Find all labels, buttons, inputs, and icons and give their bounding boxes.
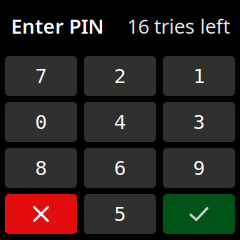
staticText: 7 <box>35 65 47 87</box>
staticText: 0 <box>35 111 47 133</box>
button[interactable]: 2 <box>84 56 156 96</box>
staticText: 16 tries left <box>127 13 230 39</box>
button[interactable]: 6 <box>84 148 156 188</box>
button[interactable]: 7 <box>5 56 77 96</box>
staticText: 2 <box>114 65 126 87</box>
button[interactable]: Cancel <box>5 194 77 234</box>
staticText: 1 <box>193 65 205 87</box>
button[interactable]: 0 <box>5 102 77 142</box>
staticText: 3 <box>193 111 205 133</box>
staticText: 5 <box>114 203 126 225</box>
button[interactable]: 3 <box>163 102 235 142</box>
staticText: Enter PIN <box>11 13 104 39</box>
staticText: 6 <box>114 157 126 179</box>
button[interactable]: 9 <box>163 148 235 188</box>
button[interactable]: 8 <box>5 148 77 188</box>
button[interactable]: 5 <box>84 194 156 234</box>
staticText: 9 <box>193 157 205 179</box>
button[interactable]: 1 <box>163 56 235 96</box>
staticText: 4 <box>114 111 126 133</box>
button[interactable]: Confirm <box>163 194 235 234</box>
staticText: 8 <box>35 157 47 179</box>
button[interactable]: 4 <box>84 102 156 142</box>
